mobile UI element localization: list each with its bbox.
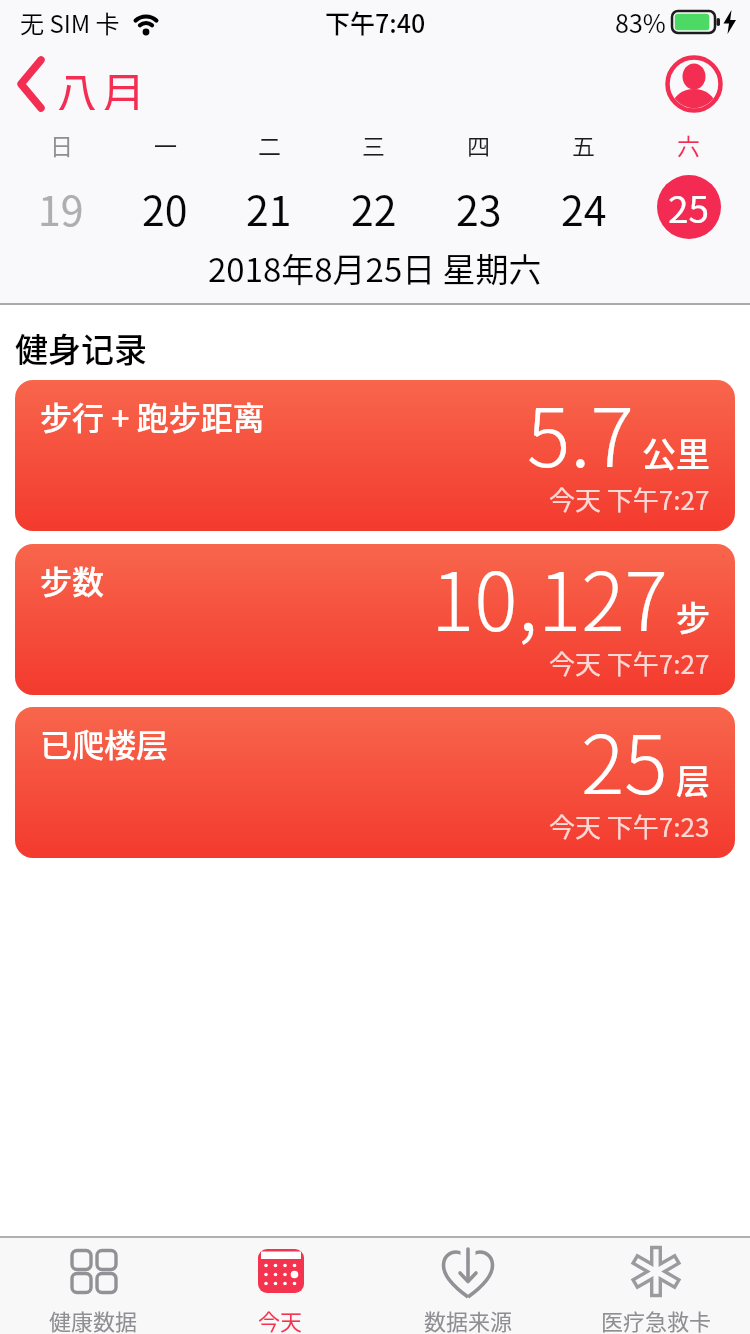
button[interactable]: 22	[321, 168, 426, 246]
button[interactable]: 23	[426, 168, 531, 246]
button[interactable]: 已爬楼层	[15, 707, 735, 858]
staticText: 23	[456, 178, 502, 237]
staticText: 2018年8月25日 星期六	[208, 244, 542, 292]
staticText: 日	[50, 128, 73, 161]
staticText: 21	[246, 178, 292, 237]
staticText: 19	[38, 178, 84, 237]
staticText: 20	[142, 178, 188, 237]
staticText: 无 SIM 卡	[20, 5, 120, 40]
button[interactable]: 25	[636, 168, 741, 246]
staticText: 五	[572, 128, 595, 161]
button[interactable]: 健康数据	[0, 1244, 187, 1334]
staticText: 二	[258, 128, 281, 161]
staticText: 今天 下午7:27	[549, 644, 710, 682]
staticText: 健身记录	[15, 324, 147, 372]
staticText: 八月	[54, 58, 146, 110]
staticText: 下午7:40	[325, 4, 426, 40]
staticText: 今天 下午7:23	[549, 807, 710, 845]
button[interactable]: 今天	[187, 1244, 374, 1334]
staticText: 83%	[615, 4, 666, 40]
button[interactable]: 20	[113, 168, 217, 246]
staticText: 已爬楼层	[40, 720, 169, 766]
staticText: 一	[154, 128, 177, 161]
staticText: 5.7	[527, 380, 634, 490]
staticText: 步数	[40, 557, 105, 603]
staticText: 三	[362, 128, 385, 161]
staticText: 数据来源	[424, 1304, 513, 1334]
staticText: 层	[676, 755, 710, 804]
button[interactable]: 八月	[54, 58, 146, 110]
staticText: 24	[561, 178, 607, 237]
button[interactable]: 步行 + 跑步距离	[15, 380, 735, 531]
staticText: 健康数据	[49, 1304, 138, 1334]
staticText: 公里	[642, 428, 710, 477]
staticText: 步行 + 跑步距离	[40, 393, 265, 439]
staticText: 22	[351, 178, 397, 237]
button[interactable]: 19	[9, 168, 113, 246]
button[interactable]: 21	[217, 168, 321, 246]
button[interactable]: 医疗急救卡	[562, 1244, 750, 1334]
button[interactable]: 数据来源	[374, 1244, 562, 1334]
staticText: 10,127	[431, 544, 668, 654]
staticText: 今天 下午7:27	[549, 480, 710, 518]
button[interactable]: 24	[531, 168, 636, 246]
staticText: 四	[467, 128, 490, 161]
staticText: 25	[668, 180, 710, 234]
staticText: 六	[677, 128, 700, 161]
staticText: 25	[581, 707, 668, 817]
button[interactable]	[665, 55, 723, 113]
staticText: 今天	[258, 1304, 303, 1334]
staticText: 步	[676, 592, 710, 641]
staticText: 医疗急救卡	[601, 1304, 712, 1334]
button[interactable]: 步数	[15, 544, 735, 695]
